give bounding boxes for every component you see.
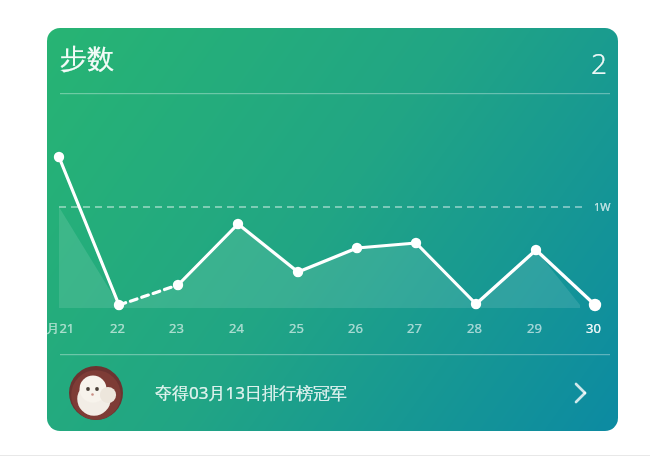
staticText: 25 [289,319,304,337]
staticText: 27 [407,319,422,337]
staticText: 29 [527,319,542,337]
staticText: 1W [594,199,611,214]
staticText: 3月21 [47,319,75,337]
staticText: 26 [348,319,363,337]
button[interactable]: 步数 [47,28,618,93]
staticText: 28 [467,319,482,337]
staticText: 30 [586,319,601,337]
staticText: 22 [110,319,125,337]
staticText: 步数 [60,42,114,76]
staticText: 24 [229,319,244,337]
button[interactable]: 夺得03月13日排行榜冠军 [47,354,618,431]
staticText: 夺得03月13日排行榜冠军 [155,381,347,404]
staticText: 23 [169,319,184,337]
staticText: 2 [591,44,607,82]
other: View leaderboard [570,383,590,403]
